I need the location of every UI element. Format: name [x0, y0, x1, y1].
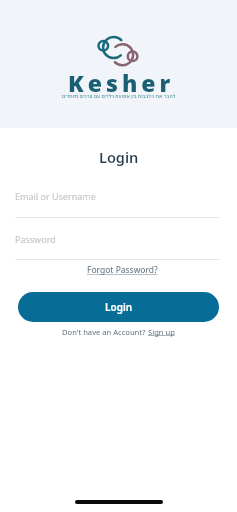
staticText: Sign up: [148, 327, 175, 337]
staticText: Don't have an Account?: [62, 327, 148, 337]
staticText: Login: [99, 147, 139, 167]
button[interactable]: Email or Username: [15, 186, 220, 218]
staticText: לחבר את הלבבות בין אמהות וילדים עם צרכים…: [62, 93, 176, 100]
other: Home indicator: [75, 500, 163, 504]
staticText: Email or Username: [15, 190, 96, 202]
button[interactable]: Sign up: [148, 327, 175, 337]
other: Kesher logo: [90, 30, 148, 72]
staticText: Password: [15, 233, 56, 245]
staticText: Kesher: [68, 67, 175, 98]
staticText: Forgot Password?: [87, 264, 158, 276]
button[interactable]: Login: [18, 292, 219, 322]
button[interactable]: Forgot Password?: [83, 262, 162, 278]
button[interactable]: Password: [15, 229, 220, 260]
staticText: Login: [105, 300, 133, 314]
